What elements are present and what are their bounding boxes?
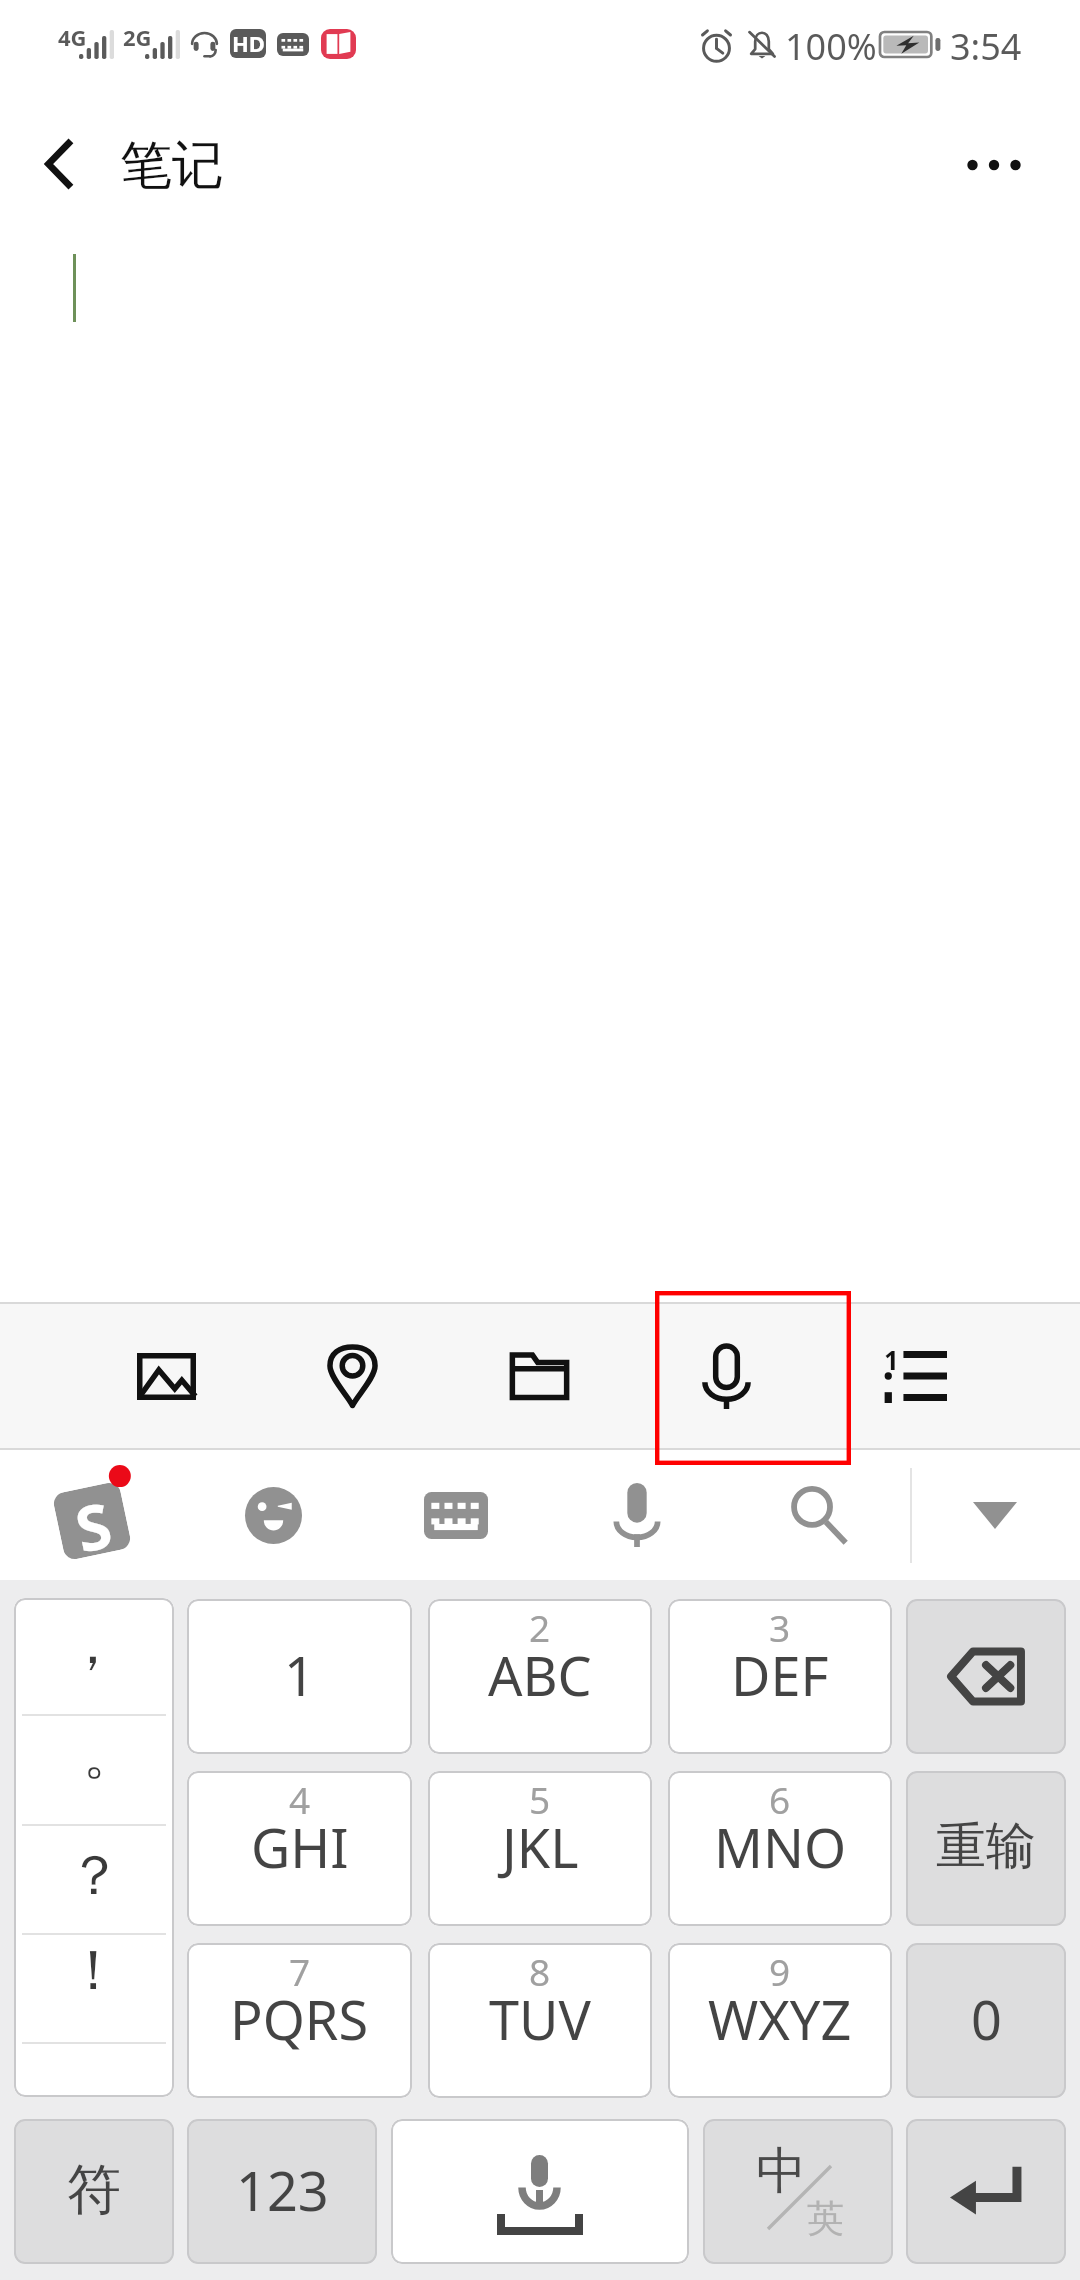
button[interactable]: 123 — [187, 2119, 377, 2264]
staticText: ， — [65, 1610, 120, 1679]
button[interactable]: 8 — [428, 1943, 652, 2098]
button[interactable]: 5 — [428, 1771, 652, 1926]
button[interactable]: Emoji — [183, 1450, 363, 1580]
staticText: GHI — [251, 1810, 349, 1884]
staticText: S — [68, 1484, 116, 1555]
button[interactable] — [906, 2119, 1066, 2264]
button[interactable] — [906, 1599, 1066, 1754]
button[interactable]: 0 — [906, 1943, 1066, 2098]
staticText: 9 — [769, 1946, 791, 1996]
staticText: 0 — [971, 1982, 1002, 2056]
staticText: 3:54 — [950, 22, 1022, 71]
button[interactable]: Ordered list — [820, 1304, 1007, 1448]
staticText: 7 — [289, 1946, 311, 1996]
button[interactable]: 笔记 — [0, 100, 248, 210]
button[interactable]: Search — [729, 1450, 909, 1580]
button[interactable]: Keyboard layout — [366, 1450, 546, 1580]
button[interactable]: Folder — [446, 1304, 633, 1448]
staticText: 5 — [529, 1774, 551, 1824]
staticText: 重输 — [936, 1815, 1036, 1878]
staticText: ？ — [67, 1841, 122, 1910]
staticText: 。 — [83, 1720, 138, 1789]
button[interactable]: 中 — [703, 2119, 893, 2264]
staticText: 4G — [58, 22, 87, 52]
staticText: MNO — [714, 1810, 847, 1884]
staticText: 中 — [756, 2140, 806, 2203]
button[interactable]: 3 — [668, 1599, 892, 1754]
button[interactable]: 2 — [428, 1599, 652, 1754]
button[interactable]: Sogou input — [2, 1450, 182, 1580]
staticText: JKL — [502, 1810, 579, 1884]
staticText: 123 — [236, 2153, 329, 2227]
button[interactable]: 。 — [14, 1714, 174, 1824]
staticText: 符 — [67, 2156, 121, 2224]
staticText: TUV — [489, 1982, 591, 2056]
staticText: 3 — [769, 1602, 791, 1652]
button[interactable]: Location — [259, 1304, 446, 1448]
staticText: 笔记 — [120, 133, 224, 199]
button[interactable]: Voice input — [633, 1304, 820, 1448]
staticText: ！ — [66, 1936, 121, 2005]
button[interactable]: 7 — [187, 1943, 412, 2098]
staticText: 4 — [289, 1774, 311, 1824]
button[interactable]: Voice input — [547, 1450, 727, 1580]
button[interactable] — [391, 2119, 689, 2264]
button[interactable]: 4 — [187, 1771, 412, 1926]
staticText: ABC — [488, 1638, 592, 1712]
button[interactable]: 6 — [668, 1771, 892, 1926]
staticText: 英 — [807, 2195, 844, 2242]
staticText: WXYZ — [708, 1982, 852, 2056]
staticText: DEF — [731, 1638, 829, 1712]
button[interactable]: More options — [944, 133, 1044, 177]
staticText: 100% — [785, 22, 877, 71]
staticText: PQRS — [230, 1982, 369, 2056]
button[interactable]: 符 — [14, 2119, 174, 2264]
button[interactable]: 重输 — [906, 1771, 1066, 1926]
button[interactable]: Hide keyboard — [905, 1450, 1080, 1580]
staticText: 1 — [284, 1638, 315, 1712]
button[interactable]: ， — [14, 1598, 174, 1714]
staticText: 2 — [529, 1602, 551, 1652]
staticText: 1 — [884, 1342, 899, 1377]
staticText: HD — [232, 29, 265, 57]
button[interactable]: 1 — [187, 1599, 412, 1754]
staticText: 6 — [769, 1774, 791, 1824]
button[interactable]: Insert image — [73, 1304, 259, 1448]
staticText: 8 — [529, 1946, 551, 1996]
staticText: 2G — [123, 22, 152, 52]
button[interactable]: ！ — [14, 1933, 174, 2042]
button[interactable]: ？ — [14, 1824, 174, 1933]
button[interactable]: 9 — [668, 1943, 892, 2098]
